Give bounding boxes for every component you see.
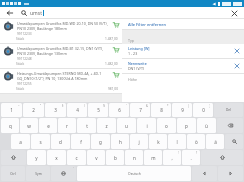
button[interactable]: y — [27, 150, 46, 165]
button[interactable]: . — [182, 150, 200, 165]
button[interactable]: 0 — [193, 103, 213, 117]
staticText: a — [19, 139, 22, 145]
button[interactable]: , — [163, 150, 181, 165]
staticText: 1 — [10, 107, 13, 113]
button[interactable]: p — [177, 118, 196, 133]
button[interactable]: k — [149, 134, 167, 149]
button[interactable]: 4 — [67, 103, 87, 117]
staticText: Del — [226, 108, 231, 112]
staticText: l — [176, 139, 178, 145]
staticText: i — [146, 123, 148, 129]
button[interactable]: Shift — [201, 150, 243, 165]
button[interactable]: Heizungs-Umwälzpumpen STERNO MD-4A, + 4D… — [0, 69, 122, 94]
staticText: . — [190, 155, 192, 161]
staticText: q — [9, 123, 12, 129]
staticText: 1.482,00 — [105, 62, 118, 66]
button[interactable]: m — [144, 150, 162, 165]
staticText: e — [47, 123, 50, 129]
staticText: ? — [196, 151, 198, 155]
button[interactable]: Filter entfernen — [234, 48, 240, 54]
staticText: Stück — [16, 87, 25, 91]
button[interactable]: Filter entfernen — [234, 63, 240, 69]
staticText: 1.487,00 — [105, 37, 118, 41]
button[interactable]: e — [39, 118, 57, 133]
button[interactable]: q — [1, 118, 19, 133]
button[interactable]: c — [67, 150, 86, 165]
button[interactable]: t — [77, 118, 96, 133]
button[interactable]: Right — [218, 166, 243, 181]
button[interactable]: Del — [214, 103, 243, 117]
button[interactable]: 7 — [130, 103, 150, 117]
staticText: g — [99, 139, 102, 145]
button[interactable]: In den Warenkorb — [112, 21, 120, 29]
staticText: % — [103, 104, 106, 108]
staticText: Ctrl — [10, 172, 16, 176]
button[interactable]: l — [168, 134, 186, 149]
button[interactable]: Umwälzpumpen Grundfos MD-WD 20-10, DN 50… — [0, 19, 122, 44]
button[interactable]: Search — [225, 134, 243, 149]
button[interactable]: n — [125, 150, 143, 165]
button[interactable]: z — [97, 118, 116, 133]
staticText: / — [84, 104, 85, 108]
button[interactable]: j — [130, 134, 148, 149]
button[interactable]: s — [31, 134, 50, 149]
staticText: 3 — [54, 107, 57, 113]
button[interactable]: Leistung [W] — [122, 44, 244, 59]
button[interactable]: a — [11, 134, 30, 149]
button[interactable]: 5 — [88, 103, 108, 117]
staticText: ' — [73, 167, 74, 171]
button[interactable]: 1 — [1, 103, 22, 117]
button[interactable]: Sym — [26, 166, 50, 181]
staticText: 8 — [160, 107, 163, 113]
staticText: " — [40, 104, 42, 108]
button[interactable]: r — [58, 118, 76, 133]
staticText: z — [105, 123, 108, 129]
button[interactable]: Deutsch — [77, 166, 191, 181]
button[interactable]: u — [117, 118, 136, 133]
staticText: s — [39, 139, 42, 145]
staticText: t — [86, 123, 88, 129]
staticText: 7 — [139, 107, 142, 113]
button[interactable]: o — [157, 118, 176, 133]
button[interactable]: Shift — [1, 150, 26, 165]
button[interactable]: x — [47, 150, 66, 165]
button[interactable]: Globe — [51, 166, 76, 181]
staticText: 6 — [118, 107, 121, 113]
staticText: c — [75, 155, 78, 161]
button[interactable]: 9 — [172, 103, 192, 117]
staticText: y — [35, 155, 38, 161]
button[interactable]: Zurück — [5, 8, 15, 18]
button[interactable]: v — [87, 150, 105, 165]
button[interactable]: ö — [187, 134, 205, 149]
staticText: 1 - 23 — [128, 51, 138, 56]
button[interactable]: Backspace — [217, 118, 243, 133]
button[interactable]: g — [91, 134, 110, 149]
button[interactable]: d — [51, 134, 70, 149]
button[interactable]: i — [137, 118, 156, 133]
button[interactable]: w — [20, 118, 38, 133]
staticText: Stück — [16, 62, 25, 66]
button[interactable]: b — [106, 150, 124, 165]
button[interactable]: f — [71, 134, 90, 149]
button[interactable]: Löschen — [229, 8, 239, 18]
button[interactable]: In den Warenkorb — [112, 71, 120, 79]
button[interactable]: In den Warenkorb — [112, 46, 120, 54]
staticText: p — [185, 123, 188, 129]
staticText: d — [59, 139, 62, 145]
button[interactable]: 2 — [23, 103, 44, 117]
button[interactable]: ä — [206, 134, 224, 149]
button[interactable]: Alle Filter entfernen — [122, 19, 244, 30]
staticText: ¦ — [209, 104, 211, 108]
staticText: | — [188, 104, 190, 108]
staticText: v — [95, 155, 98, 161]
button[interactable]: Left — [192, 166, 217, 181]
button[interactable]: Nennweite — [122, 59, 244, 74]
button[interactable]: 6 — [109, 103, 129, 117]
button[interactable]: 8 — [151, 103, 171, 117]
button[interactable]: ü — [197, 118, 216, 133]
button[interactable]: h — [111, 134, 129, 149]
staticText: 99112255 — [17, 82, 32, 86]
button[interactable]: Ctrl — [1, 166, 25, 181]
button[interactable]: 3 — [45, 103, 66, 117]
button[interactable]: Umwälzpumpen Grundfos MD-B1 32-15, DN1 (… — [0, 44, 122, 69]
